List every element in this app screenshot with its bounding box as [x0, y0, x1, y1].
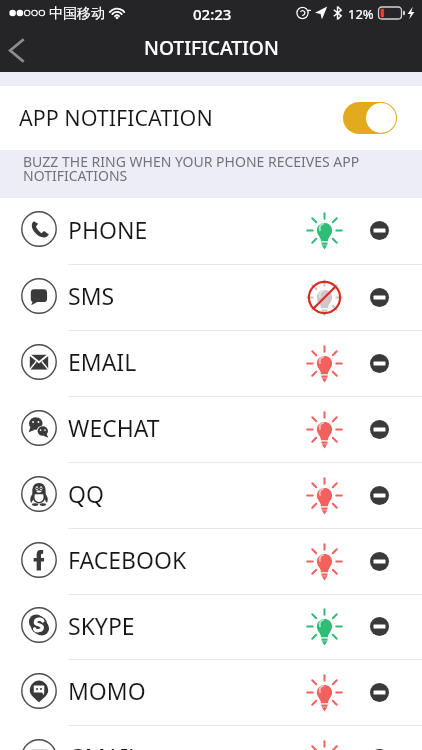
button[interactable]: Disable [359, 409, 399, 449]
button[interactable]: WECHAT [0, 397, 422, 462]
button[interactable]: Ring light [302, 275, 346, 319]
button[interactable]: Disable [359, 343, 399, 383]
staticText: QQ [68, 478, 104, 509]
button[interactable]: GMAIL [0, 726, 422, 750]
staticText: GMAIL [68, 741, 141, 750]
button[interactable]: Back [0, 26, 46, 72]
staticText: SMS [68, 280, 115, 311]
button[interactable]: Disable [359, 606, 399, 646]
button[interactable]: Ring light [302, 604, 346, 648]
button[interactable]: APP NOTIFICATION [0, 86, 422, 150]
button[interactable]: MOMO [0, 660, 422, 725]
button[interactable]: FACEBOOK [0, 529, 422, 594]
staticText: APP NOTIFICATION [19, 103, 213, 132]
button[interactable]: Ring light [302, 208, 346, 252]
button[interactable]: Disable [359, 277, 399, 317]
staticText: WECHAT [68, 412, 160, 443]
button[interactable]: Disable [359, 738, 399, 750]
button[interactable]: SMS [0, 265, 422, 330]
button[interactable]: Ring light [302, 539, 346, 583]
button[interactable]: Disable [359, 210, 399, 250]
button[interactable]: Disable [359, 672, 399, 712]
staticText: BUZZ THE RING WHEN YOUR PHONE RECEIVES A… [23, 152, 360, 185]
staticText: NOTIFICATION [144, 34, 279, 60]
staticText: 12% [348, 5, 374, 23]
button[interactable]: SKYPE [0, 595, 422, 659]
button[interactable]: PHONE [0, 198, 422, 264]
staticText: SKYPE [68, 610, 135, 641]
button[interactable]: Disable [359, 541, 399, 581]
staticText: 中国移动 [49, 5, 105, 23]
staticText: MOMO [68, 675, 146, 706]
button[interactable]: Disable [359, 475, 399, 515]
button[interactable]: Ring light [302, 407, 346, 451]
button[interactable]: Ring light [302, 341, 346, 385]
button[interactable]: Ring light [302, 670, 346, 714]
button[interactable]: Ring light [302, 736, 346, 750]
button[interactable]: Ring light [302, 473, 346, 517]
staticText: PHONE [68, 214, 148, 245]
button[interactable]: QQ [0, 463, 422, 528]
button[interactable]: EMAIL [0, 331, 422, 396]
staticText: FACEBOOK [68, 544, 187, 575]
staticText: EMAIL [68, 346, 137, 377]
staticText: 02:23 [193, 4, 232, 24]
